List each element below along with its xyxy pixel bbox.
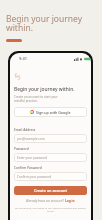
button[interactable]: Log in	[65, 199, 75, 203]
staticText: Create an account to start your mindful …	[14, 95, 58, 103]
staticText: Email Address	[14, 128, 36, 132]
button[interactable]: Enter your password	[14, 153, 87, 162]
staticText: you@example.com	[17, 137, 45, 141]
staticText: Confirm your password	[17, 175, 52, 179]
staticText: Password	[14, 147, 29, 151]
staticText: Confirm Password	[14, 166, 42, 170]
staticText: Begin your journey within.	[14, 86, 75, 93]
staticText: By continuing, you agree to our Terms of…	[14, 206, 87, 212]
staticText: Sign up with Google	[36, 110, 71, 115]
button[interactable]: Sign up with Google	[14, 107, 87, 117]
button[interactable]: Create an account	[14, 186, 87, 195]
staticText: Create an account	[34, 188, 67, 193]
staticText: Enter your password	[17, 156, 48, 160]
staticText: Begin your journey within.	[6, 13, 82, 34]
button[interactable]: you@example.com	[14, 134, 87, 143]
staticText: Already have an account?	[26, 199, 65, 203]
staticText: 9:41	[19, 56, 27, 61]
button[interactable]: Confirm your password	[14, 172, 87, 181]
